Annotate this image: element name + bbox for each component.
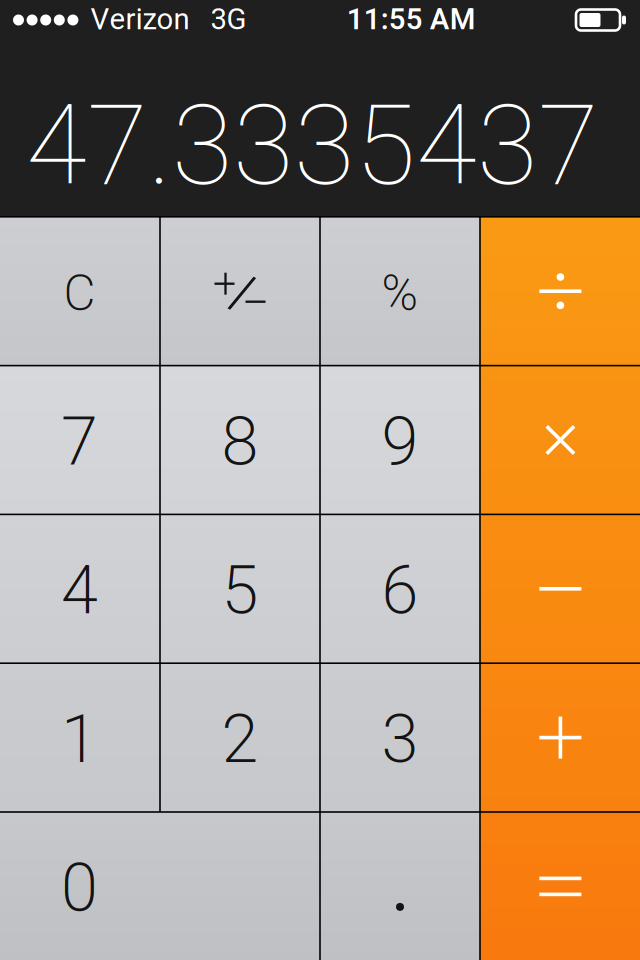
staticText: 1 [61,692,98,790]
button[interactable]: C [0,218,159,365]
staticText: 6 [381,543,418,641]
button[interactable]: Add [481,664,640,811]
button[interactable]: Equals [481,813,640,960]
staticText: 3 [381,692,418,790]
staticText: C [64,258,96,331]
staticText: 9 [381,394,418,492]
staticText: 11:55 AM [347,0,476,42]
button[interactable]: Subtract [481,515,640,662]
staticText: Verizon [90,0,189,42]
staticText: 4 [61,543,98,641]
staticText: 47.3335437 [26,68,599,230]
button[interactable]: Decimal point [321,813,479,960]
staticText: 7 [61,394,98,492]
button[interactable]: 2 [161,664,319,811]
staticText: 8 [221,394,258,492]
staticText: 5 [221,543,258,641]
staticText: 2 [221,692,258,790]
button[interactable]: 0 [0,813,319,960]
staticText: % [381,258,418,331]
button[interactable]: 6 [321,515,479,662]
button[interactable]: 8 [161,366,319,514]
button[interactable]: 1 [0,664,159,811]
button[interactable]: 3 [321,664,479,811]
button[interactable]: 7 [0,366,159,514]
staticText: 0 [61,841,98,939]
button[interactable]: Multiply [481,366,640,514]
button[interactable]: Divide [481,218,640,365]
button[interactable]: Plus minus [161,218,319,365]
button[interactable]: 4 [0,515,159,662]
button[interactable]: % [321,218,479,365]
button[interactable]: 5 [161,515,319,662]
button[interactable]: 9 [321,366,479,514]
staticText: 3G [210,0,246,42]
